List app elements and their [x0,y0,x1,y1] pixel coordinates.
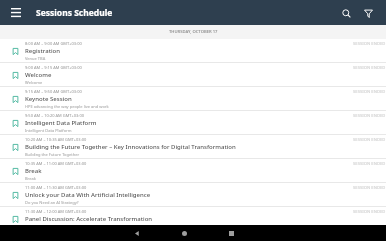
button[interactable]: Home [176,225,192,241]
button[interactable]: 11:00 AM – 11:30 AM GMT+03:00 [0,183,386,206]
staticText: 8:00 AM – 9:00 AM GMT+03:00 [25,41,82,46]
staticText: Venue TBA [25,56,46,61]
button[interactable]: 10:20 AM – 10:35 AM GMT+03:00 [0,135,386,158]
staticText: Do you Need an AI Strategy? [25,200,79,205]
staticText: 11:00 AM – 11:30 AM GMT+03:00 [25,185,87,190]
button[interactable]: 11:30 AM – 12:00 AM GMT+03:00 [0,207,386,225]
button[interactable]: 9:15 AM – 9:50 AM GMT+03:00 [0,87,386,110]
staticText: Break [25,167,42,175]
staticText: 9:15 AM – 9:50 AM GMT+03:00 [25,89,82,94]
staticText: Welcome [25,71,52,79]
button[interactable]: Search [335,2,357,24]
staticText: THURSDAY, OCTOBER 17 [169,29,218,35]
staticText: Intelligent Data Platform [25,119,97,127]
staticText: 11:30 AM – 12:00 AM GMT+03:00 [25,209,87,214]
button[interactable]: 9:00 AM – 9:15 AM GMT+03:00 [0,63,386,86]
staticText: Intelligent Data Platform [25,128,72,133]
button[interactable]: Open navigation menu [7,4,25,22]
staticText: Building the Future Together [25,152,80,157]
staticText: 9:00 AM – 9:15 AM GMT+03:00 [25,65,82,70]
staticText: Registration [25,47,60,55]
button[interactable]: Back [129,225,145,241]
staticText: SESSION ENDED [353,185,386,191]
staticText: Sessions Schedule [36,7,113,19]
staticText: 10:35 AM – 11:00 AM GMT+03:00 [25,161,87,166]
staticText: Unlock your Data With Artificial Intelli… [25,191,151,199]
staticText: 10:20 AM – 10:35 AM GMT+03:00 [25,137,87,142]
staticText: HPE advancing the way people live and wo… [25,104,109,109]
button[interactable]: 8:00 AM – 9:00 AM GMT+03:00 [0,39,386,62]
staticText: SESSION ENDED [353,113,386,119]
staticText: 9:50 AM – 10:20 AM GMT+03:00 [25,113,85,118]
staticText: Break [25,176,36,181]
staticText: SESSION ENDED [353,209,386,215]
staticText: SESSION ENDED [353,89,386,95]
staticText: SESSION ENDED [353,65,386,71]
staticText: SESSION ENDED [353,137,386,143]
button[interactable]: Recent apps [223,225,239,241]
staticText: Keynote Session [25,95,72,103]
button[interactable]: 10:35 AM – 11:00 AM GMT+03:00 [0,159,386,182]
staticText: SESSION ENDED [353,41,386,47]
staticText: Building the Future Together – Key Innov… [25,143,236,151]
staticText: Welcome [25,80,43,85]
staticText: Panel Discussion: Accelerate Transformat… [25,215,153,223]
button[interactable]: 9:50 AM – 10:20 AM GMT+03:00 [0,111,386,134]
staticText: SESSION ENDED [353,161,386,167]
button[interactable]: Filter [357,2,379,24]
